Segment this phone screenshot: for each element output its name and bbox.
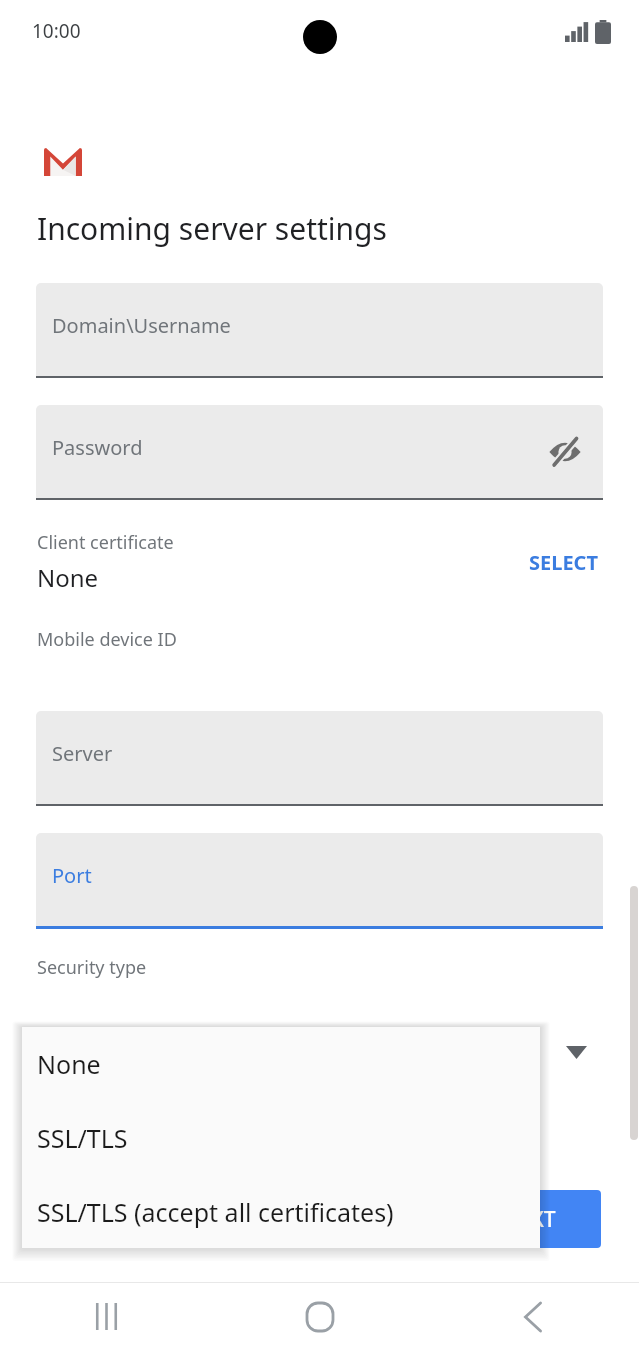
staticText: Password bbox=[52, 434, 143, 461]
staticText: Port bbox=[52, 862, 92, 889]
button[interactable]: Domain\Username bbox=[36, 283, 603, 376]
button[interactable]: NEXT bbox=[457, 1190, 601, 1248]
staticText: NEXT bbox=[503, 1205, 556, 1234]
button[interactable]: Back bbox=[426, 1283, 639, 1350]
staticText: None bbox=[37, 561, 99, 594]
staticText: SSL/TLS (accept all certificates) bbox=[37, 1195, 394, 1229]
staticText: 10:00 bbox=[32, 18, 81, 44]
staticText: Mobile device ID bbox=[37, 627, 177, 652]
staticText: Incoming server settings bbox=[37, 208, 387, 249]
button[interactable]: Server bbox=[36, 711, 603, 804]
button[interactable]: Recent apps bbox=[0, 1283, 213, 1350]
staticText: Client certificate bbox=[37, 530, 174, 555]
staticText: Domain\Username bbox=[52, 312, 231, 339]
button[interactable]: SELECT bbox=[525, 543, 602, 582]
button[interactable]: Expand security type bbox=[552, 1030, 600, 1074]
button[interactable]: Home bbox=[213, 1283, 426, 1350]
button[interactable]: Show password bbox=[541, 428, 589, 476]
staticText: Security type bbox=[37, 955, 147, 980]
button[interactable]: Password bbox=[36, 405, 603, 498]
button[interactable]: SSL/TLS bbox=[22, 1101, 540, 1175]
staticText: SSL/TLS bbox=[37, 1121, 128, 1155]
button[interactable]: None bbox=[22, 1027, 540, 1101]
staticText: None bbox=[37, 1047, 101, 1081]
staticText: SELECT bbox=[529, 549, 598, 576]
button[interactable]: SSL/TLS (accept all certificates) bbox=[22, 1175, 540, 1248]
staticText: Server bbox=[52, 740, 113, 767]
button[interactable]: Port bbox=[36, 833, 603, 926]
